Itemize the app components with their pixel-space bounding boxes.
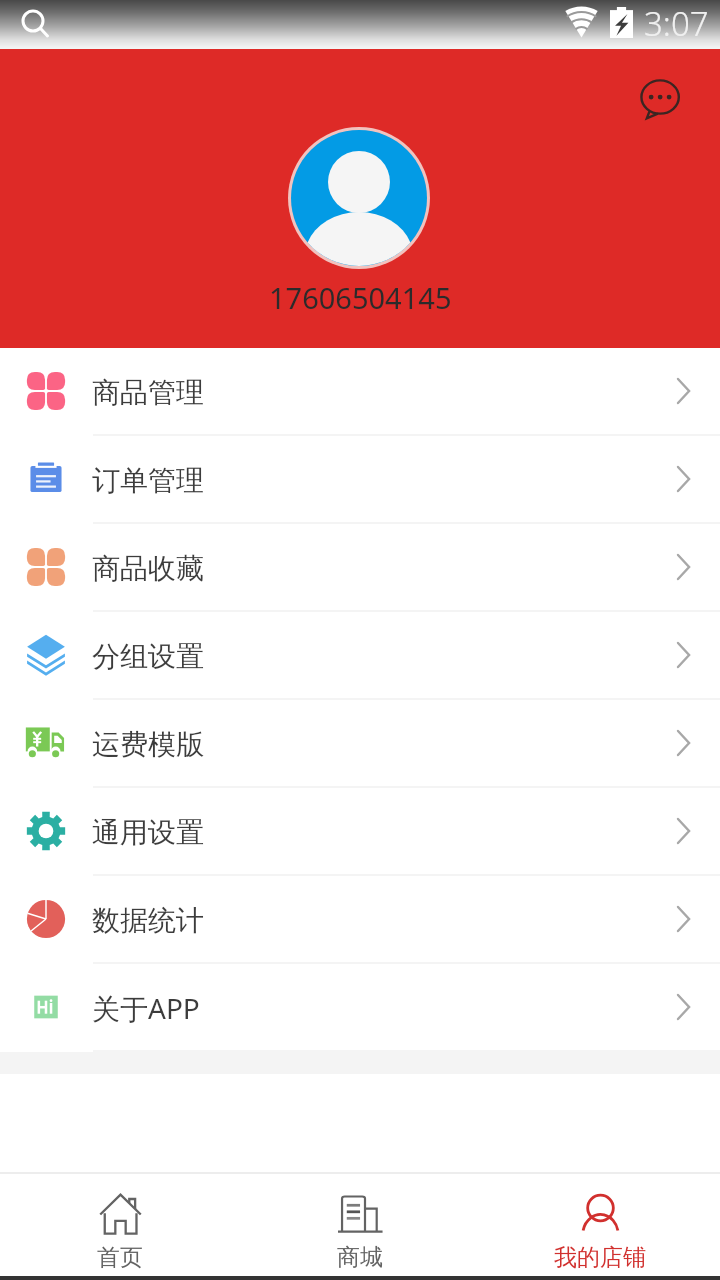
staticText: 运费模版: [92, 727, 204, 762]
staticText: 17606504145: [269, 278, 452, 317]
staticText: 订单管理: [92, 463, 204, 498]
button[interactable]: 通用设置: [0, 788, 720, 874]
staticText: 商品管理: [92, 375, 204, 410]
staticText: 商城: [337, 1243, 383, 1272]
staticText: 通用设置: [92, 815, 204, 850]
button[interactable]: 运费模版: [0, 700, 720, 786]
button[interactable]: 商品管理: [0, 348, 720, 434]
button[interactable]: 首页: [0, 1174, 240, 1272]
button[interactable]: 分组设置: [0, 612, 720, 698]
staticText: 首页: [97, 1243, 143, 1272]
button[interactable]: 数据统计: [0, 876, 720, 962]
staticText: 关于APP: [92, 989, 200, 1027]
staticText: 商品收藏: [92, 551, 204, 586]
button[interactable]: 我的店铺: [480, 1174, 720, 1272]
button[interactable]: 订单管理: [0, 436, 720, 522]
staticText: 3:07: [644, 1, 709, 46]
staticText: 我的店铺: [554, 1243, 646, 1272]
button[interactable]: 商品收藏: [0, 524, 720, 610]
staticText: 数据统计: [92, 903, 204, 938]
button[interactable]: Messages: [639, 78, 683, 122]
staticText: 分组设置: [92, 639, 204, 674]
button[interactable]: 商城: [240, 1174, 480, 1272]
button[interactable]: 关于APP: [0, 964, 720, 1050]
